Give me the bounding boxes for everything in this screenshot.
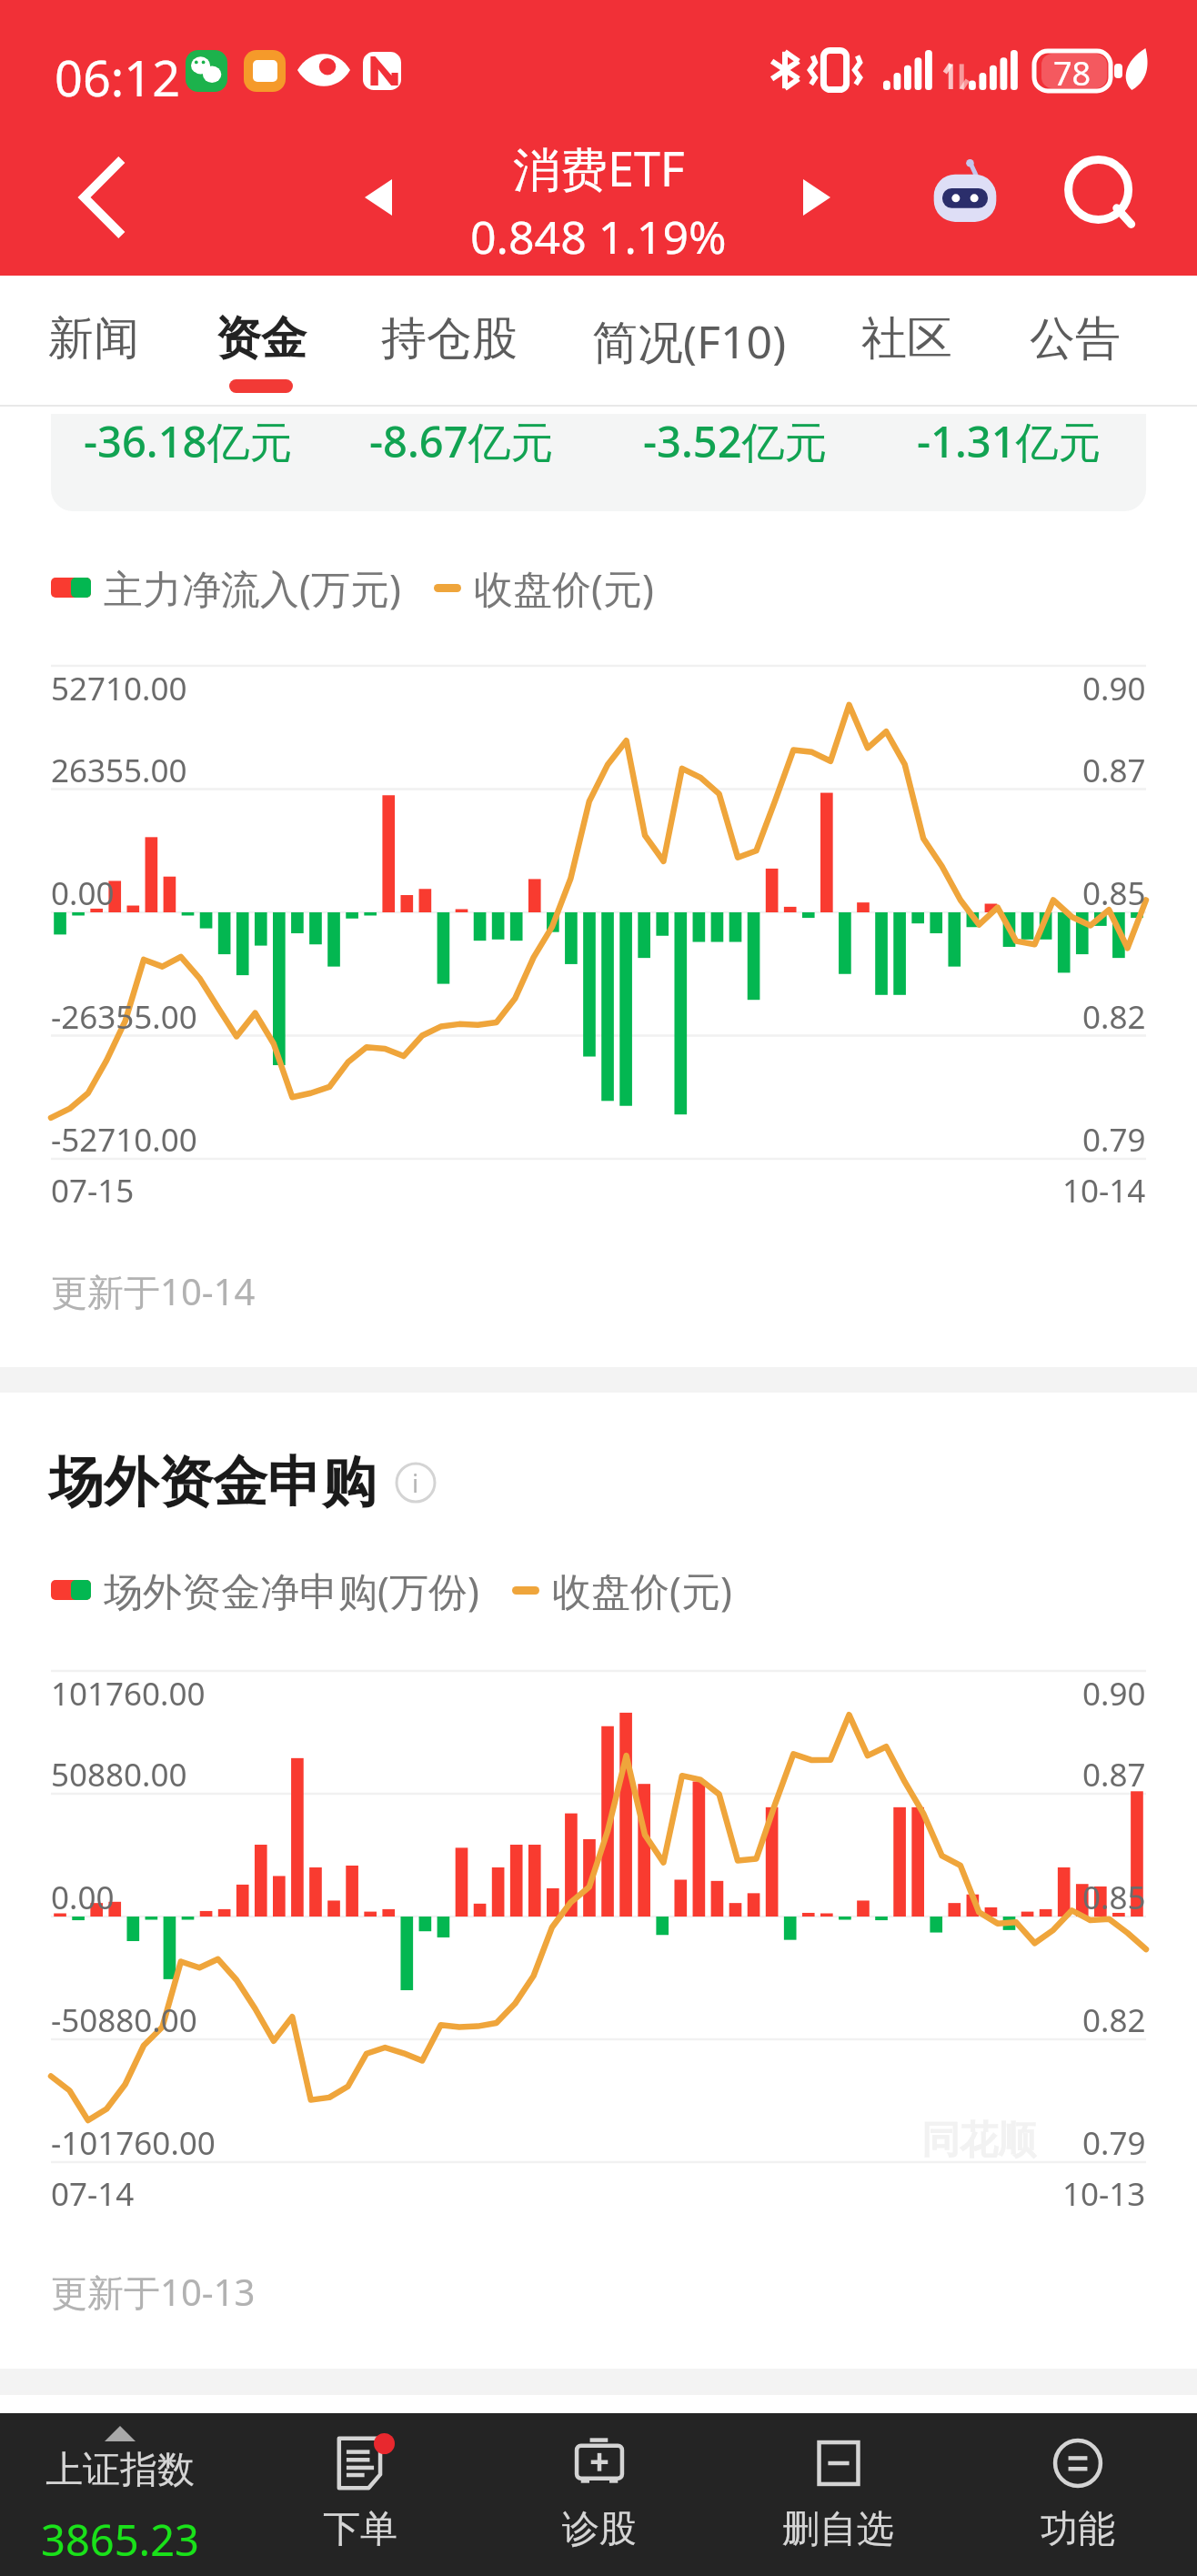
staticText: 0.82 [1082,995,1146,1039]
staticText: -8.67亿元 [369,414,554,470]
button[interactable]: 诊股 [479,2413,719,2576]
staticText: -52710.00 [51,1118,197,1162]
staticText: 公告 [1030,310,1121,367]
staticText: -101760.00 [51,2121,216,2165]
staticText: 持仓股 [381,310,518,367]
staticText: 0.90 [1082,1672,1146,1716]
button[interactable]: 资金 [202,276,320,407]
button[interactable]: 消费ETF [444,118,753,276]
staticText: 0.848 1.19% [470,206,727,267]
button[interactable]: AI助手 [901,118,1029,276]
staticText: -1.31亿元 [917,414,1101,470]
staticText: 07-14 [51,2172,135,2216]
staticText: 更新于10-13 [51,2267,256,2317]
button[interactable]: 上证指数 [0,2413,240,2576]
staticText: 78 [1053,51,1091,91]
staticText: 101760.00 [51,1672,206,1716]
staticText: 0.00 [51,1876,115,1919]
staticText: 0.79 [1082,2121,1146,2165]
button[interactable]: 新闻 [35,276,153,407]
staticText: 0.79 [1082,1118,1146,1162]
button[interactable]: 简况(F10) [568,276,810,407]
staticText: 场外资金申购 [49,1448,377,1517]
button[interactable]: 搜索 [1042,118,1170,276]
staticText: 10-13 [1062,2172,1146,2216]
staticText: 诊股 [562,2506,637,2553]
staticText: 06:12 [55,44,181,111]
staticText: 0.85 [1082,1876,1146,1919]
button[interactable]: 上一只股票 [315,118,442,276]
staticText: 更新于10-14 [51,1266,256,1316]
staticText: i [412,1465,419,1500]
staticText: -36.18亿元 [84,414,293,470]
staticText: 同花顺 [921,2117,1036,2165]
staticText: 社区 [861,310,952,367]
button[interactable]: i [393,1460,438,1505]
staticText: 0.00 [51,871,115,915]
button[interactable]: 社区 [848,276,966,407]
staticText: 资金 [216,310,307,367]
button[interactable]: 下一只股票 [753,118,880,276]
staticText: 10-14 [1062,1169,1146,1213]
staticText: 上证指数 [45,2447,195,2494]
staticText: 收盘价(元) [474,561,654,615]
staticText: 0.90 [1082,667,1146,710]
staticText: -3.52亿元 [643,414,828,470]
staticText: 新闻 [48,310,139,367]
staticText: 场外资金净申购(万份) [104,1564,479,1617]
button[interactable]: 下单 [240,2413,479,2576]
staticText: 0.82 [1082,1998,1146,2042]
button[interactable]: -36.18亿元 [51,414,1146,511]
staticText: 3865.23 [41,2511,199,2569]
staticText: 简况(F10) [592,310,787,372]
staticText: 0.87 [1082,749,1146,792]
staticText: 0.85 [1082,871,1146,915]
staticText: 0.87 [1082,1753,1146,1796]
staticText: 主力净流入(万元) [104,561,401,615]
staticText: 下单 [323,2506,397,2553]
button[interactable]: 公告 [1016,276,1134,407]
staticText: 07-15 [51,1169,135,1213]
staticText: 消费ETF [513,136,685,200]
button[interactable]: 返回 [28,118,174,276]
staticText: 52710.00 [51,667,187,710]
staticText: 功能 [1041,2506,1115,2553]
staticText: -26355.00 [51,995,197,1039]
staticText: 收盘价(元) [552,1564,732,1617]
button[interactable]: 功能 [958,2413,1197,2576]
staticText: 26355.00 [51,749,187,792]
button[interactable]: 持仓股 [367,276,532,407]
staticText: 50880.00 [51,1753,187,1796]
button[interactable]: 删自选 [719,2413,958,2576]
staticText: -50880.00 [51,1998,197,2042]
staticText: 删自选 [782,2506,894,2553]
